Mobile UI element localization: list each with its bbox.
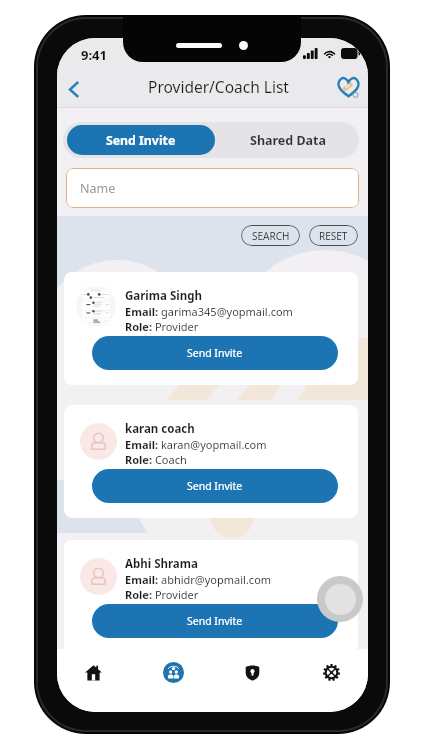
staticText: SEARCH <box>252 229 290 243</box>
button[interactable]: Send Invite <box>92 469 338 503</box>
staticText: Email: garima345@yopmail.com <box>125 304 293 319</box>
staticText: 9:41 <box>81 46 107 64</box>
staticText: Send Invite <box>106 132 176 149</box>
staticText: Role: Provider <box>125 319 199 334</box>
button[interactable]: Settings <box>317 658 345 686</box>
button[interactable]: Send Invite <box>92 604 338 638</box>
button[interactable]: Send Invite <box>92 336 338 370</box>
staticText: Shared Data <box>250 132 327 149</box>
button[interactable]: Shared Data <box>218 122 359 158</box>
staticText: RESET <box>319 229 348 243</box>
button[interactable]: Abhi Shrama <box>64 540 358 653</box>
button[interactable]: Security <box>238 658 266 686</box>
staticText: Send Invite <box>187 479 243 493</box>
staticText: Send Invite <box>187 346 243 360</box>
staticText: Provider/Coach List <box>148 76 289 97</box>
button[interactable]: Send Invite <box>67 125 215 155</box>
staticText: Email: karan@yopmail.com <box>125 437 267 452</box>
button[interactable]: App logo <box>334 73 362 101</box>
button[interactable]: Garima Singh <box>64 272 358 385</box>
button[interactable]: Scroll to top <box>317 576 363 622</box>
staticText: Email: abhidr@yopmail.com <box>125 572 272 587</box>
button[interactable]: Home <box>79 658 107 686</box>
staticText: Role: Provider <box>125 587 199 602</box>
button[interactable]: SEARCH <box>241 225 300 246</box>
button[interactable]: karan coach <box>64 405 358 518</box>
staticText: Role: Coach <box>125 452 187 467</box>
staticText: Send Invite <box>187 614 243 628</box>
staticText: Abhi Shrama <box>125 556 198 572</box>
button[interactable]: RESET <box>309 225 358 246</box>
staticText: Name <box>80 180 116 197</box>
button[interactable]: Providers <box>159 658 187 686</box>
staticText: Garima Singh <box>125 288 202 304</box>
button[interactable]: Back <box>57 71 92 107</box>
staticText: karan coach <box>125 421 195 437</box>
button[interactable]: Name <box>66 168 359 208</box>
